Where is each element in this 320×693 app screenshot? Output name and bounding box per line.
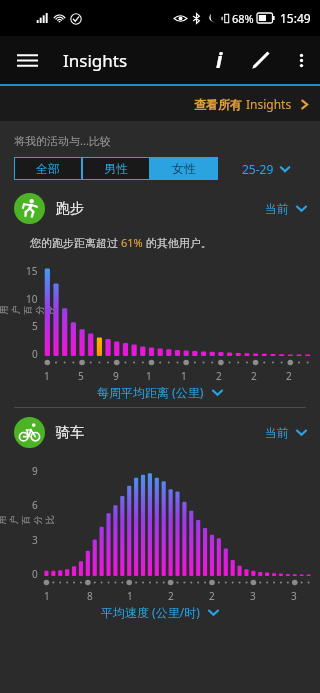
staticText: 每周平均距离 (公里) <box>97 384 204 400</box>
staticText: 的其他用户。 <box>143 235 212 250</box>
staticText: 8 <box>87 589 93 603</box>
staticText: 查看所有 <box>194 96 246 112</box>
button[interactable]: Info <box>198 39 240 81</box>
staticText: 29 <box>286 369 295 383</box>
staticText: 1 <box>44 369 50 383</box>
staticText: Insights <box>63 49 128 72</box>
button[interactable]: 平均速度 (公里/时) <box>0 604 320 620</box>
button[interactable]: More options <box>282 41 320 79</box>
staticText: 您的跑步距离超过 <box>30 235 121 250</box>
staticText: 跑步 <box>56 200 84 218</box>
button[interactable]: Menu <box>6 39 48 81</box>
staticText: 20 <box>168 589 175 603</box>
staticText: 0 <box>32 567 38 581</box>
button[interactable]: 男性 <box>82 157 150 180</box>
staticText: 5 <box>32 319 38 333</box>
staticText: Garmin 用户百分比 <box>0 512 56 528</box>
staticText: 5 <box>78 369 84 383</box>
staticText: 21 <box>216 369 225 383</box>
button[interactable]: Edit <box>240 39 282 81</box>
button[interactable]: 查看所有 <box>194 96 310 112</box>
staticText: Garmin 用户百分比 <box>0 302 54 318</box>
staticText: i <box>216 46 223 75</box>
staticText: 当前 <box>265 201 289 216</box>
staticText: 13 <box>146 369 155 383</box>
staticText: 9 <box>113 369 119 383</box>
staticText: 15 <box>26 264 38 278</box>
button[interactable]: 25-29 <box>242 161 291 177</box>
staticText: 3 <box>32 533 38 547</box>
staticText: 当前 <box>265 425 289 440</box>
staticText: 39 <box>291 589 298 603</box>
staticText: 9 <box>32 464 38 478</box>
staticText: 将我的活动与...比较 <box>14 133 111 148</box>
staticText: 平均速度 (公里/时) <box>101 604 200 620</box>
staticText: 68% <box>232 11 254 26</box>
staticText: 25-29 <box>242 161 274 177</box>
button[interactable]: 全部 <box>14 157 82 180</box>
staticText: 女性 <box>172 161 196 176</box>
staticText: 27 <box>209 589 216 603</box>
staticText: 15:49 <box>280 10 311 26</box>
button[interactable]: 当前 <box>265 425 308 440</box>
button[interactable]: 当前 <box>265 201 308 216</box>
staticText: 6 <box>32 498 38 512</box>
staticText: 17 <box>181 369 190 383</box>
staticText: Insights <box>246 96 292 112</box>
staticText: 33 <box>250 589 257 603</box>
staticText: 骑车 <box>56 424 84 442</box>
staticText: 0 <box>32 347 38 361</box>
button[interactable]: 女性 <box>150 157 218 180</box>
button[interactable]: 每周平均距离 (公里) <box>0 384 320 400</box>
staticText: 14 <box>127 589 134 603</box>
staticText: 10 <box>26 292 38 306</box>
staticText: 25 <box>251 369 260 383</box>
staticText: 全部 <box>36 161 60 176</box>
staticText: 61% <box>121 235 143 250</box>
staticText: 男性 <box>104 161 128 176</box>
staticText: 1 <box>44 589 50 603</box>
